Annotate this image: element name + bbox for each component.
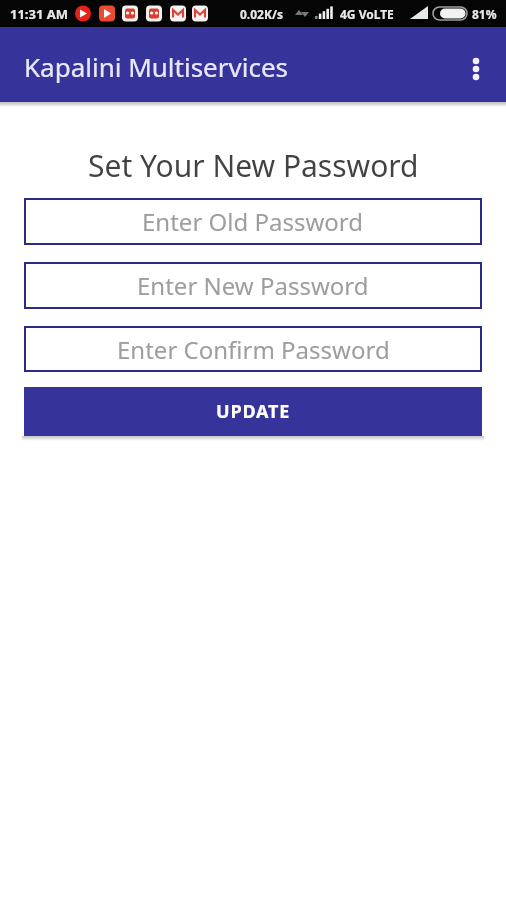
button[interactable]: Enter Old Password xyxy=(24,198,482,245)
button[interactable]: Enter New Password xyxy=(24,262,482,309)
staticText: UPDATE xyxy=(216,399,291,424)
staticText: Enter Confirm Password xyxy=(117,333,390,366)
staticText: 0.02K/s xyxy=(240,6,283,22)
button[interactable]: Enter Confirm Password xyxy=(24,326,482,372)
staticText: 81% xyxy=(472,6,497,22)
staticText: Enter New Password xyxy=(137,269,369,302)
staticText: Enter Old Password xyxy=(142,205,364,238)
button[interactable]: UPDATE xyxy=(24,387,482,436)
button[interactable] xyxy=(464,57,488,81)
staticText: Kapalini Multiservices xyxy=(24,49,289,84)
staticText: 11:31 AM xyxy=(10,5,69,23)
staticText: Set Your New Password xyxy=(88,145,419,186)
staticText: 4G VoLTE xyxy=(340,6,394,22)
